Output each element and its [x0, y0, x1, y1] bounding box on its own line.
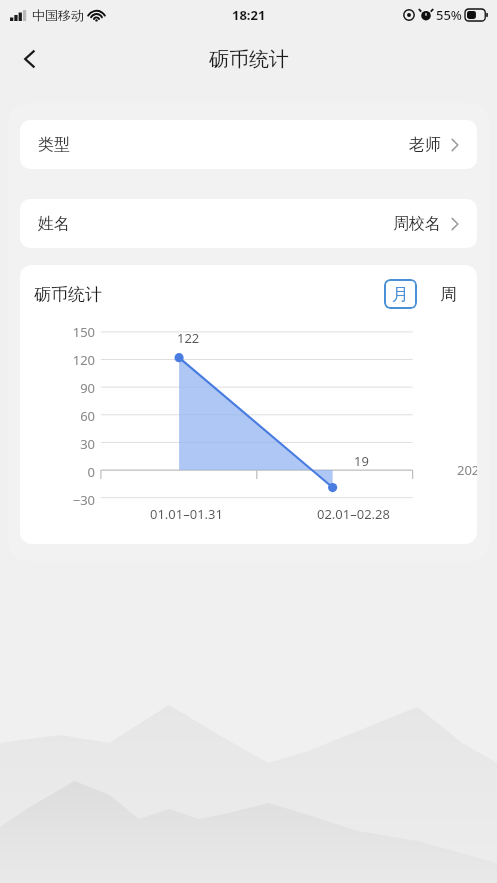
- staticText: 19: [354, 452, 369, 470]
- staticText: −30: [72, 491, 95, 509]
- staticText: 18:21: [232, 6, 266, 24]
- staticText: 01.01–01.31: [150, 505, 223, 523]
- staticText: 月: [392, 284, 409, 305]
- staticText: 30: [80, 435, 95, 453]
- button[interactable]: Back: [6, 35, 54, 83]
- staticText: 0: [87, 463, 95, 481]
- staticText: 周: [440, 284, 457, 305]
- staticText: 砺币统计: [34, 284, 102, 305]
- staticText: 150: [72, 323, 95, 341]
- staticText: 姓名: [38, 214, 70, 234]
- staticText: 2023: [457, 461, 477, 479]
- staticText: 02.01–02.28: [317, 505, 390, 523]
- staticText: 老师: [409, 135, 441, 155]
- staticText: 120: [72, 351, 95, 369]
- staticText: 122: [177, 329, 200, 347]
- staticText: 类型: [38, 135, 70, 155]
- staticText: 周校名: [393, 214, 441, 234]
- staticText: 60: [80, 407, 95, 425]
- button[interactable]: 姓名: [20, 199, 477, 248]
- staticText: 中国移动: [32, 7, 84, 23]
- button[interactable]: 周: [433, 279, 463, 309]
- button[interactable]: 月: [384, 279, 417, 309]
- staticText: 55%: [436, 6, 462, 24]
- staticText: 90: [80, 379, 95, 397]
- button[interactable]: 类型: [20, 120, 477, 169]
- staticText: 砺币统计: [209, 47, 289, 72]
